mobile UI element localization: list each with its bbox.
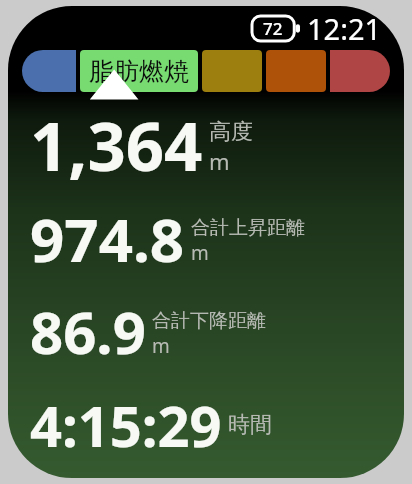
staticText: 4:15:29 — [30, 387, 222, 463]
button[interactable] — [22, 50, 76, 92]
staticText: 時間 — [228, 411, 272, 439]
staticText: 12:21 — [307, 9, 382, 48]
button[interactable]: 974.8 — [30, 198, 404, 280]
button[interactable]: 脂肪燃焼 — [80, 50, 198, 92]
button[interactable]: 4:15:29 — [30, 387, 404, 463]
button[interactable]: 1,364 — [30, 99, 404, 190]
button[interactable] — [202, 50, 262, 92]
staticText: 86.9 — [30, 292, 146, 371]
staticText: m — [209, 146, 230, 176]
button[interactable]: 86.9 — [30, 292, 404, 371]
staticText: 合計下降距離 — [152, 309, 266, 333]
staticText: 合計上昇距離 — [191, 216, 305, 240]
button[interactable] — [330, 50, 390, 92]
staticText: 高度 — [209, 118, 253, 146]
staticText: 974.8 — [30, 198, 185, 280]
button[interactable] — [266, 50, 326, 92]
staticText: m — [152, 333, 170, 359]
staticText: m — [191, 240, 209, 266]
staticText: 脂肪燃焼 — [89, 56, 189, 87]
other: Current heart rate zone marker — [8, 50, 404, 98]
staticText: 1,364 — [30, 99, 203, 190]
staticText: 72 — [263, 17, 283, 40]
